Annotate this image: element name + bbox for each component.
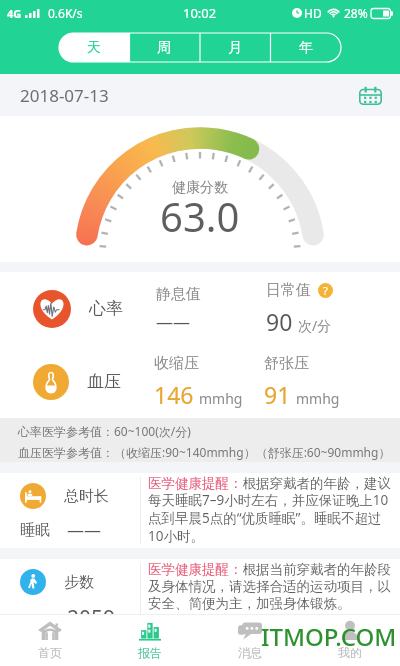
button[interactable]: 总时长 xyxy=(0,473,400,548)
staticText: 运动 xyxy=(20,613,50,632)
staticText: 年 xyxy=(299,39,313,57)
button[interactable]: 首页 xyxy=(0,615,100,666)
other: Calendar xyxy=(359,86,382,105)
staticText: 血压 xyxy=(87,371,121,392)
button[interactable]: 天 xyxy=(59,33,129,62)
staticText: 4G xyxy=(7,6,22,21)
staticText: —— xyxy=(156,310,190,333)
staticText: 天 xyxy=(87,39,101,57)
button[interactable]: 我的 xyxy=(300,615,400,666)
staticText: 146 xyxy=(154,379,194,410)
staticText: 消息 xyxy=(238,645,262,660)
staticText: 10:02 xyxy=(183,4,217,22)
staticText: 我的 xyxy=(338,645,362,660)
staticText: 医学健康提醒：根据穿戴者的年龄，建议每天睡眠7–9小时左右，并应保证晚上10点到… xyxy=(148,475,391,545)
staticText: 收缩压 xyxy=(154,354,199,373)
staticText: 静息值 xyxy=(156,285,201,304)
staticText: 90 xyxy=(266,306,293,337)
other: 我的 xyxy=(338,621,362,640)
staticText: ? xyxy=(323,283,328,298)
button[interactable]: 年 xyxy=(270,33,341,62)
button[interactable]: 消息 xyxy=(200,615,300,666)
staticText: 月 xyxy=(228,39,242,57)
button[interactable]: 月 xyxy=(199,33,270,62)
other: 报告 xyxy=(138,621,162,640)
other: 消息 xyxy=(238,621,262,640)
staticText: 血压医学参考值：（收缩压:90~140mmhg）（舒张压:60~90mmhg） xyxy=(18,444,391,460)
button[interactable]: 周 xyxy=(129,33,199,62)
button[interactable]: Help xyxy=(318,283,333,298)
staticText: 报告 xyxy=(138,645,162,660)
staticText: ITMOP.COM xyxy=(261,620,397,653)
staticText: 次/分 xyxy=(298,316,332,335)
staticText: 28% xyxy=(344,5,368,21)
staticText: 步数 xyxy=(64,573,94,592)
staticText: mmhg xyxy=(199,389,243,408)
staticText: 医学健康提醒：根据当前穿戴者的年龄段及身体情况，请选择合适的运动项目，以安全、简… xyxy=(148,561,391,612)
staticText: 2059 xyxy=(67,604,116,633)
other: 首页 xyxy=(38,621,62,640)
button[interactable]: 2018-07-13 xyxy=(0,74,400,116)
staticText: 首页 xyxy=(38,645,62,660)
staticText: 总时长 xyxy=(64,487,109,506)
staticText: 舒张压 xyxy=(264,354,309,373)
staticText: 睡眠 xyxy=(20,521,50,540)
button[interactable]: 步数 xyxy=(0,559,400,634)
staticText: 0.6K/s xyxy=(48,5,83,21)
staticText: 63.0 xyxy=(160,189,240,243)
staticText: 健康分数 xyxy=(172,179,228,197)
staticText: 心率 xyxy=(89,298,123,319)
staticText: 91 xyxy=(264,379,291,410)
staticText: —— xyxy=(67,518,101,541)
button[interactable]: 报告 xyxy=(100,615,200,666)
staticText: HD xyxy=(304,5,322,21)
button[interactable]: 心率 xyxy=(0,272,400,345)
staticText: mmhg xyxy=(296,389,340,408)
staticText: 周 xyxy=(157,39,171,57)
staticText: 日常值 xyxy=(266,281,311,300)
button[interactable]: 血压 xyxy=(0,345,400,418)
staticText: 心率医学参考值：60~100(次/分) xyxy=(18,423,191,439)
staticText: 2018-07-13 xyxy=(20,84,109,107)
